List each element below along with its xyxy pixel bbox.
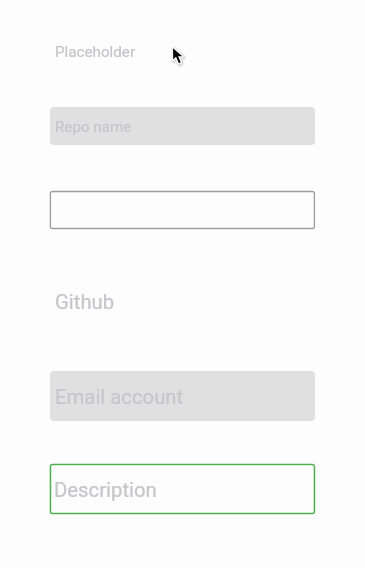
button[interactable]: Github [55,290,115,314]
button[interactable]: Description [49,462,316,516]
staticText: Description [54,478,157,502]
button[interactable]: Placeholder [55,43,136,61]
button[interactable]: Email account [50,371,315,421]
staticText: Repo name [55,118,132,136]
staticText: Placeholder [55,43,136,61]
staticText: Github [55,290,115,314]
button[interactable]: Repo name [50,107,315,145]
staticText: Email account [55,385,184,409]
button[interactable]: Empty text field [49,190,316,230]
